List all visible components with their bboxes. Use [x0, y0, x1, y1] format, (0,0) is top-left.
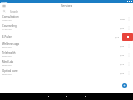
- staticText: Consultation: [2, 15, 19, 19]
- staticText: 11:30 AM: [2, 28, 12, 31]
- staticText: $30: [120, 44, 125, 47]
- button[interactable]: Search: [0, 9, 133, 14]
- button[interactable]: Wellness app: [0, 41, 133, 50]
- staticText: $15: [115, 35, 120, 38]
- button[interactable]: Telehealth: [0, 50, 133, 59]
- staticText: 05:00 PM: [2, 64, 12, 67]
- staticText: Telehealth: [2, 51, 16, 55]
- button[interactable]: Med Lab: [0, 59, 133, 68]
- staticText: 03:40 PM: [2, 55, 12, 58]
- staticText: $45: [120, 53, 125, 56]
- staticText: E-Pulse: [2, 35, 12, 39]
- staticText: Optical care: [2, 69, 18, 73]
- staticText: Wellness app: [2, 42, 20, 46]
- staticText: 02:15 PM: [2, 46, 12, 49]
- staticText: Search: [10, 10, 19, 14]
- button[interactable]: E-Pulse: [0, 32, 133, 41]
- staticText: Med Lab: [2, 60, 14, 64]
- staticText: $10: [120, 62, 125, 65]
- staticText: Services: [61, 4, 73, 8]
- button[interactable]: Optical care: [0, 68, 133, 77]
- staticText: Free: [120, 17, 125, 20]
- button[interactable]: Menu: [2, 4, 6, 8]
- button[interactable]: Counseling: [0, 23, 133, 32]
- button[interactable]: Delete: [122, 33, 133, 41]
- staticText: $20: [120, 26, 125, 29]
- staticText: 06:20 PM: [2, 73, 12, 76]
- staticText: 10:00 AM: [2, 19, 12, 22]
- staticText: 10:24: [1, 0, 8, 3]
- staticText: Counseling: [2, 24, 17, 28]
- button[interactable]: Consultation: [0, 14, 133, 23]
- button[interactable]: Add: [122, 83, 127, 88]
- staticText: $25: [120, 71, 125, 74]
